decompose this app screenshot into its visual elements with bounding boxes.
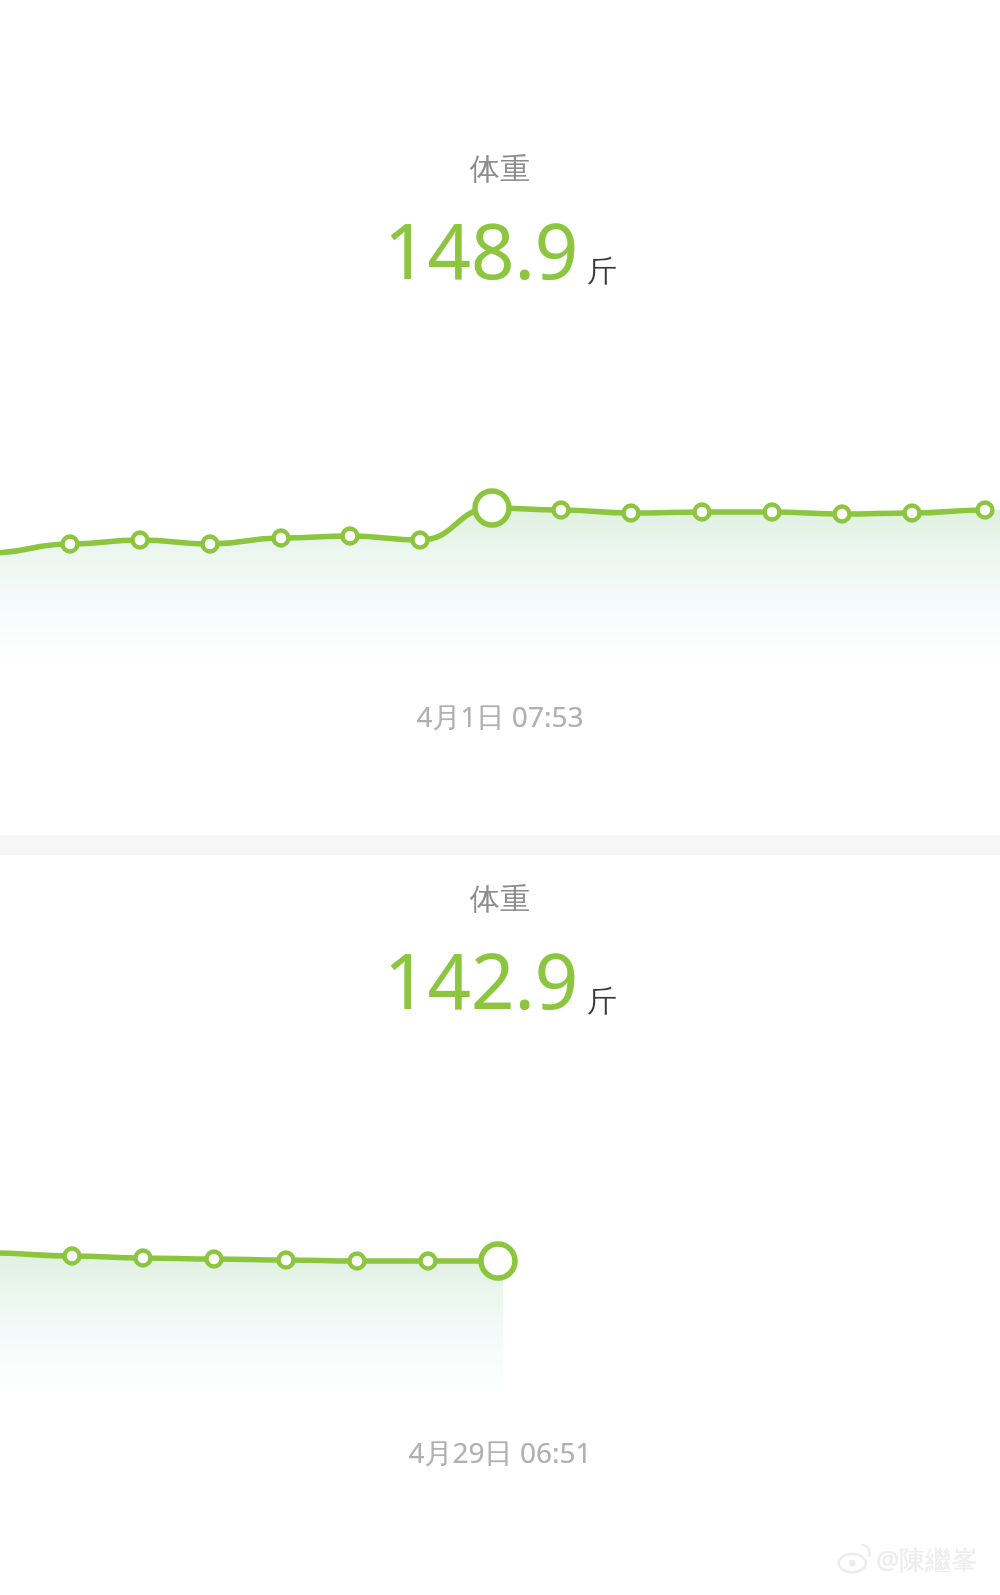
button[interactable]: 体重 [0,855,1000,1595]
staticText: 体重 [470,880,530,918]
staticText: 斤 [587,982,617,1020]
staticText: 4月29日 06:51 [0,1433,1000,1471]
staticText: 体重 [470,150,530,188]
staticText: 4月1日 07:53 [0,697,1000,735]
staticText: 148.9 [384,198,579,302]
button[interactable]: 体重 [0,0,1000,835]
staticText: 142.9 [384,928,579,1032]
staticText: 斤 [587,252,617,290]
staticText: @陳繼峯 [876,1541,978,1577]
other: Weibo watermark [838,1541,978,1577]
